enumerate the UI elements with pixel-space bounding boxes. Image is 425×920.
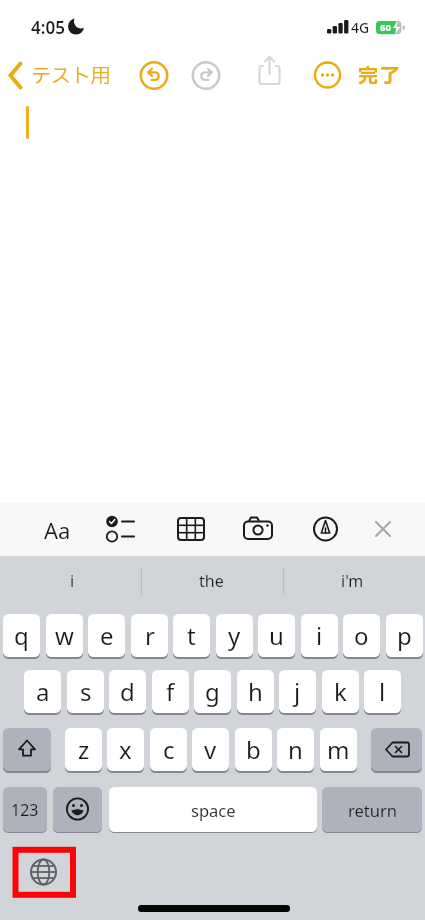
staticText: the [199,570,224,592]
staticText: k [334,675,347,708]
button[interactable]: the [163,568,259,594]
staticText: 123 [11,799,39,821]
button[interactable]: z [65,728,102,771]
staticText: f [166,675,175,708]
staticText: i [316,619,323,652]
button[interactable]: 完了 [350,62,408,88]
button[interactable]: return [322,787,422,832]
button[interactable]: v [192,728,229,771]
button[interactable] [53,787,102,832]
button[interactable]: Aa [38,515,76,543]
staticText: x [119,733,132,766]
staticText: z [78,733,90,766]
staticText: 完了 [358,62,401,88]
button[interactable]: f [152,670,189,713]
button[interactable] [177,514,207,544]
staticText: return [348,799,397,821]
staticText: i'm [341,570,364,592]
staticText: s [80,675,92,708]
button[interactable]: e [88,614,125,657]
staticText: b [246,733,261,766]
button[interactable]: n [277,728,314,771]
button[interactable] [3,728,51,771]
staticText: m [327,733,350,766]
button[interactable]: a [24,670,61,713]
button[interactable]: i [24,568,120,594]
staticText: h [248,675,263,708]
button[interactable]: p [386,614,423,657]
button[interactable]: w [46,614,83,657]
staticText: i [70,570,75,592]
button[interactable] [255,59,284,89]
staticText: p [397,619,412,652]
button[interactable]: h [237,670,274,713]
staticText: w [55,619,74,652]
button[interactable]: k [322,670,359,713]
button[interactable] [313,61,341,89]
button[interactable]: テスト用 [30,62,112,88]
button[interactable]: space [109,787,317,832]
staticText: c [163,733,175,766]
staticText: テスト用 [31,62,111,88]
staticText: g [205,675,220,708]
button[interactable] [310,514,340,544]
staticText: j [294,675,301,708]
staticText: y [228,619,241,652]
button[interactable] [28,857,59,888]
staticText: u [269,619,284,652]
button[interactable]: l [364,670,401,713]
button[interactable]: d [109,670,146,713]
staticText: space [191,799,236,821]
button[interactable]: q [3,614,40,657]
staticText: o [354,619,369,652]
button[interactable]: x [107,728,144,771]
button[interactable] [371,728,422,771]
button[interactable]: i [301,614,338,657]
button[interactable]: g [194,670,231,713]
button[interactable] [243,514,273,544]
button[interactable]: j [279,670,316,713]
button[interactable]: t [173,614,210,657]
staticText: l [379,675,386,708]
button[interactable]: b [235,728,272,771]
staticText: Aa [44,515,71,543]
button[interactable]: y [216,614,253,657]
staticText: q [14,619,29,652]
staticText: 60 [380,21,391,34]
button[interactable]: r [131,614,168,657]
staticText: 4G [351,18,370,37]
button[interactable] [140,61,168,89]
button[interactable]: s [67,670,104,713]
button[interactable] [104,514,136,544]
staticText: 4:05 [31,16,65,37]
button[interactable]: c [150,728,187,771]
button[interactable] [6,60,28,90]
button[interactable] [192,61,220,89]
staticText: t [187,619,196,652]
staticText: a [36,675,50,708]
button[interactable]: i'm [304,568,400,594]
button[interactable]: m [320,728,357,771]
button[interactable] [370,516,396,542]
staticText: r [145,619,155,652]
staticText: d [120,675,135,708]
button[interactable]: o [343,614,380,657]
staticText: n [288,733,303,766]
button[interactable]: u [258,614,295,657]
button[interactable]: 123 [3,787,47,832]
staticText: e [100,619,114,652]
staticText: v [204,733,217,766]
